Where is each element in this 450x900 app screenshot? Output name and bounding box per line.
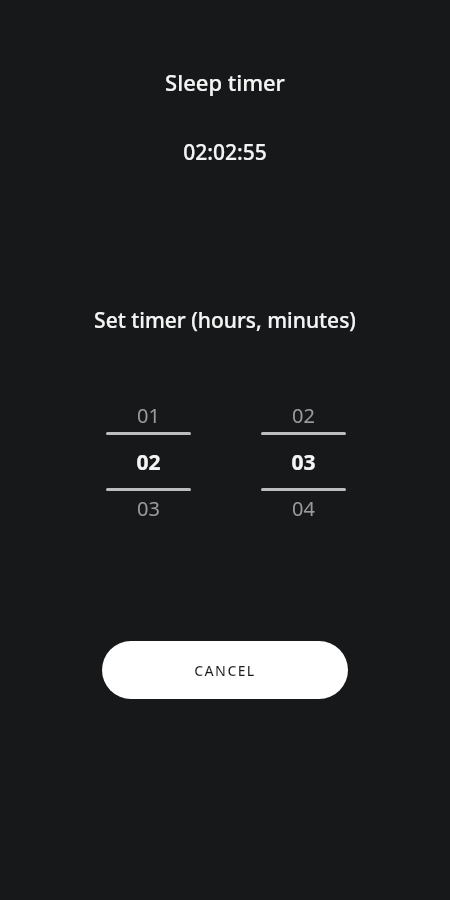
staticText: 01 bbox=[137, 402, 160, 429]
staticText: 02 bbox=[136, 448, 161, 477]
button[interactable]: 01 bbox=[92, 402, 204, 429]
staticText: CANCEL bbox=[194, 661, 256, 680]
button[interactable]: 02 bbox=[247, 402, 359, 429]
button[interactable]: 02 bbox=[92, 445, 204, 479]
button[interactable]: 03 bbox=[92, 495, 204, 522]
staticText: 03 bbox=[137, 495, 160, 522]
staticText: 02 bbox=[292, 402, 315, 429]
staticText: Sleep timer bbox=[165, 67, 285, 97]
button[interactable]: 04 bbox=[247, 495, 359, 522]
staticText: 03 bbox=[291, 448, 316, 477]
staticText: 02:02:55 bbox=[183, 138, 267, 167]
staticText: 04 bbox=[292, 495, 315, 522]
button[interactable]: 03 bbox=[247, 445, 359, 479]
staticText: Set timer (hours, minutes) bbox=[94, 306, 356, 335]
button[interactable]: CANCEL bbox=[102, 641, 348, 699]
